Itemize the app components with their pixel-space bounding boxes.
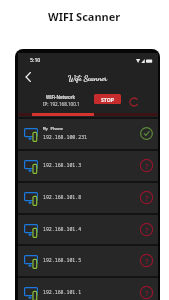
staticText: 192.168.101.4 — [43, 226, 82, 233]
staticText: 192.168.100.231 — [43, 134, 88, 141]
button[interactable]: Unknown device — [140, 159, 153, 172]
button[interactable]: Unknown device — [140, 223, 153, 236]
button[interactable]: 192.168.101.1 — [18, 278, 158, 300]
staticText: 192.168.101.8 — [43, 194, 82, 201]
staticText: STOP — [101, 96, 115, 103]
button[interactable]: STOP — [94, 94, 121, 104]
staticText: My Phone — [43, 126, 64, 132]
staticText: 192.168.101.1 — [43, 289, 82, 296]
staticText: ? — [145, 288, 149, 298]
staticText: Wifi Scanner — [68, 74, 108, 84]
staticText: ? — [145, 193, 149, 203]
button[interactable]: Back — [18, 67, 38, 87]
staticText: ? — [145, 161, 149, 171]
button[interactable]: Unknown device — [140, 286, 153, 299]
staticText: 192.168.101.3 — [43, 162, 82, 169]
staticText: 192.168.101.5 — [43, 257, 82, 264]
staticText: WiFi-Network — [46, 94, 76, 100]
staticText: WIFI Scanner — [48, 9, 121, 24]
staticText: IP: 192.168.100.1 — [43, 101, 80, 107]
button[interactable]: Device online — [140, 127, 153, 140]
staticText: ? — [145, 256, 149, 266]
button[interactable]: My Phone — [18, 119, 158, 149]
button[interactable]: 192.168.101.5 — [18, 246, 158, 276]
button[interactable]: Unknown device — [140, 254, 153, 267]
button[interactable]: 192.168.101.8 — [18, 183, 158, 213]
button[interactable]: 192.168.101.3 — [18, 151, 158, 181]
button[interactable]: 192.168.101.4 — [18, 215, 158, 245]
button[interactable]: Unknown device — [140, 191, 153, 204]
staticText: 5:10 — [30, 56, 41, 63]
staticText: ? — [145, 225, 149, 235]
